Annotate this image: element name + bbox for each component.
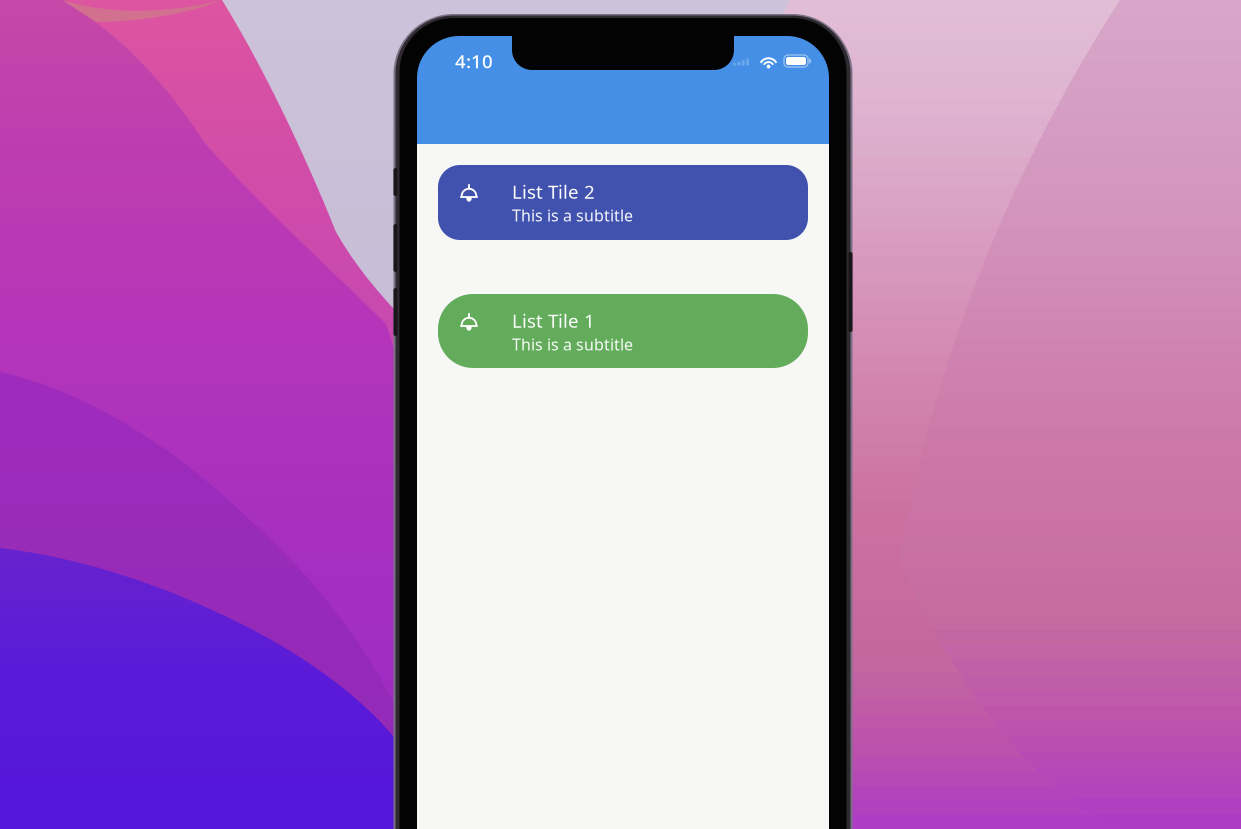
staticText: List Tile 1 <box>512 308 595 333</box>
staticText: This is a subtitle <box>512 205 633 226</box>
button[interactable]: List Tile 2 <box>438 165 808 240</box>
staticText: This is a subtitle <box>512 334 633 355</box>
staticText: List Tile 2 <box>512 179 595 204</box>
staticText: 4:10 <box>455 49 493 73</box>
button[interactable]: List Tile 1 <box>438 294 808 368</box>
